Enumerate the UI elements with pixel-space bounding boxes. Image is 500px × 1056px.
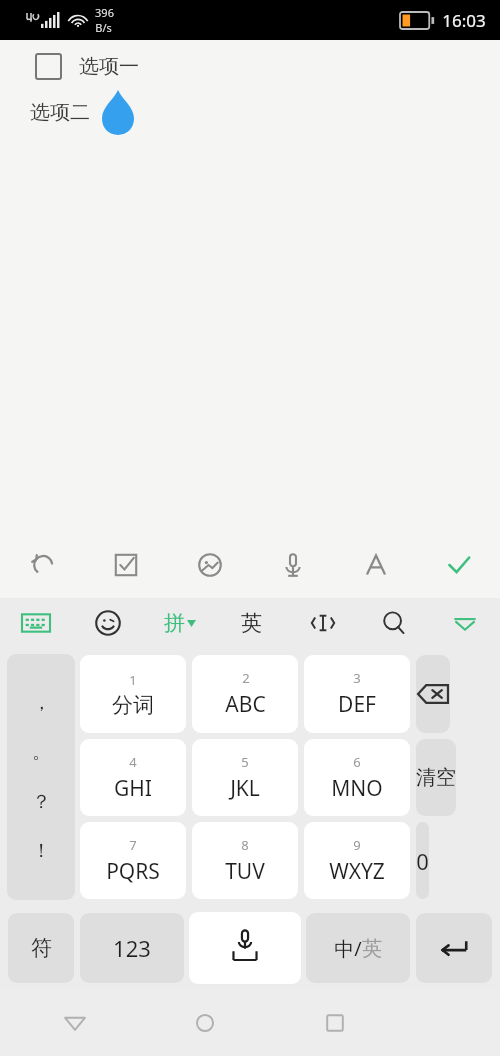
staticText: 分词 xyxy=(112,692,154,718)
staticText: 5 xyxy=(241,753,249,771)
staticText: PQRS xyxy=(106,857,160,886)
staticText: DEF xyxy=(338,690,376,719)
button[interactable]: Hide keyboard xyxy=(429,598,500,648)
button[interactable]: 8 xyxy=(192,822,298,899)
staticText: 符 xyxy=(31,935,52,961)
staticText: 选项一 xyxy=(79,54,139,79)
staticText: 英 xyxy=(362,936,382,961)
button[interactable]: 7 xyxy=(80,822,186,899)
staticText: 0 xyxy=(416,846,429,876)
button[interactable]: Checklist xyxy=(84,532,168,598)
staticText: 。 xyxy=(32,740,51,764)
staticText: 英 xyxy=(241,610,262,636)
button[interactable]: Undo xyxy=(0,532,84,598)
button[interactable]: Backspace xyxy=(416,655,450,733)
button[interactable]: 拼 xyxy=(144,598,216,648)
button[interactable]: 1 xyxy=(80,655,186,733)
staticText: 3 xyxy=(353,669,361,687)
button[interactable]: Done xyxy=(417,532,500,598)
button[interactable]: Voice xyxy=(251,532,334,598)
button[interactable]: 5 xyxy=(192,739,298,816)
staticText: 2 xyxy=(242,669,250,687)
staticText: 6 xyxy=(353,753,361,771)
staticText: 清空 xyxy=(416,765,456,790)
staticText: ABC xyxy=(225,690,266,719)
button[interactable]: 6 xyxy=(304,739,410,816)
button[interactable]: 3 xyxy=(304,655,410,733)
staticText: ！ xyxy=(32,839,51,863)
button[interactable]: 英 xyxy=(216,598,287,648)
button[interactable]: 符 xyxy=(8,913,74,983)
button[interactable]: Enter xyxy=(416,913,492,983)
staticText: 9 xyxy=(353,836,361,854)
button[interactable]: Text style xyxy=(334,532,417,598)
staticText: WXYZ xyxy=(329,857,385,886)
staticText: 拼 xyxy=(164,610,185,636)
staticText: 4 xyxy=(129,753,137,771)
staticText: 7 xyxy=(129,836,137,854)
staticText: 16:03 xyxy=(442,9,486,32)
button[interactable]: 0 xyxy=(416,822,429,899)
staticText: GHI xyxy=(114,774,152,803)
button[interactable]: 9 xyxy=(304,822,410,899)
staticText: ， xyxy=(32,691,51,715)
staticText: JKL xyxy=(230,774,260,803)
button[interactable]: Space, voice input xyxy=(189,912,301,984)
button[interactable]: 清空 xyxy=(416,739,456,816)
button[interactable]: Back xyxy=(48,996,102,1050)
button[interactable]: Emoji xyxy=(72,598,144,648)
staticText: 123 xyxy=(113,933,151,963)
button[interactable]: Image xyxy=(168,532,251,598)
staticText: 396 xyxy=(95,5,114,20)
staticText: 选项二 xyxy=(30,100,90,125)
button[interactable]: 2 xyxy=(192,655,298,733)
button[interactable]: Cursor control xyxy=(287,598,358,648)
button[interactable]: Search xyxy=(358,598,429,648)
staticText: TUV xyxy=(225,857,265,886)
staticText: B/s xyxy=(95,20,112,35)
staticText: MNO xyxy=(331,774,383,803)
button[interactable]: ， xyxy=(7,654,75,900)
button[interactable]: 中/ xyxy=(306,913,410,983)
button[interactable]: 4 xyxy=(80,739,186,816)
button[interactable]: Home xyxy=(178,996,232,1050)
button[interactable]: Keyboard layout xyxy=(0,598,72,648)
staticText: 8 xyxy=(241,836,249,854)
staticText: 中/ xyxy=(334,935,362,962)
button[interactable]: Recents xyxy=(308,996,362,1050)
button[interactable]: 123 xyxy=(80,913,184,983)
staticText: ？ xyxy=(32,790,51,814)
staticText: 1 xyxy=(129,671,137,689)
